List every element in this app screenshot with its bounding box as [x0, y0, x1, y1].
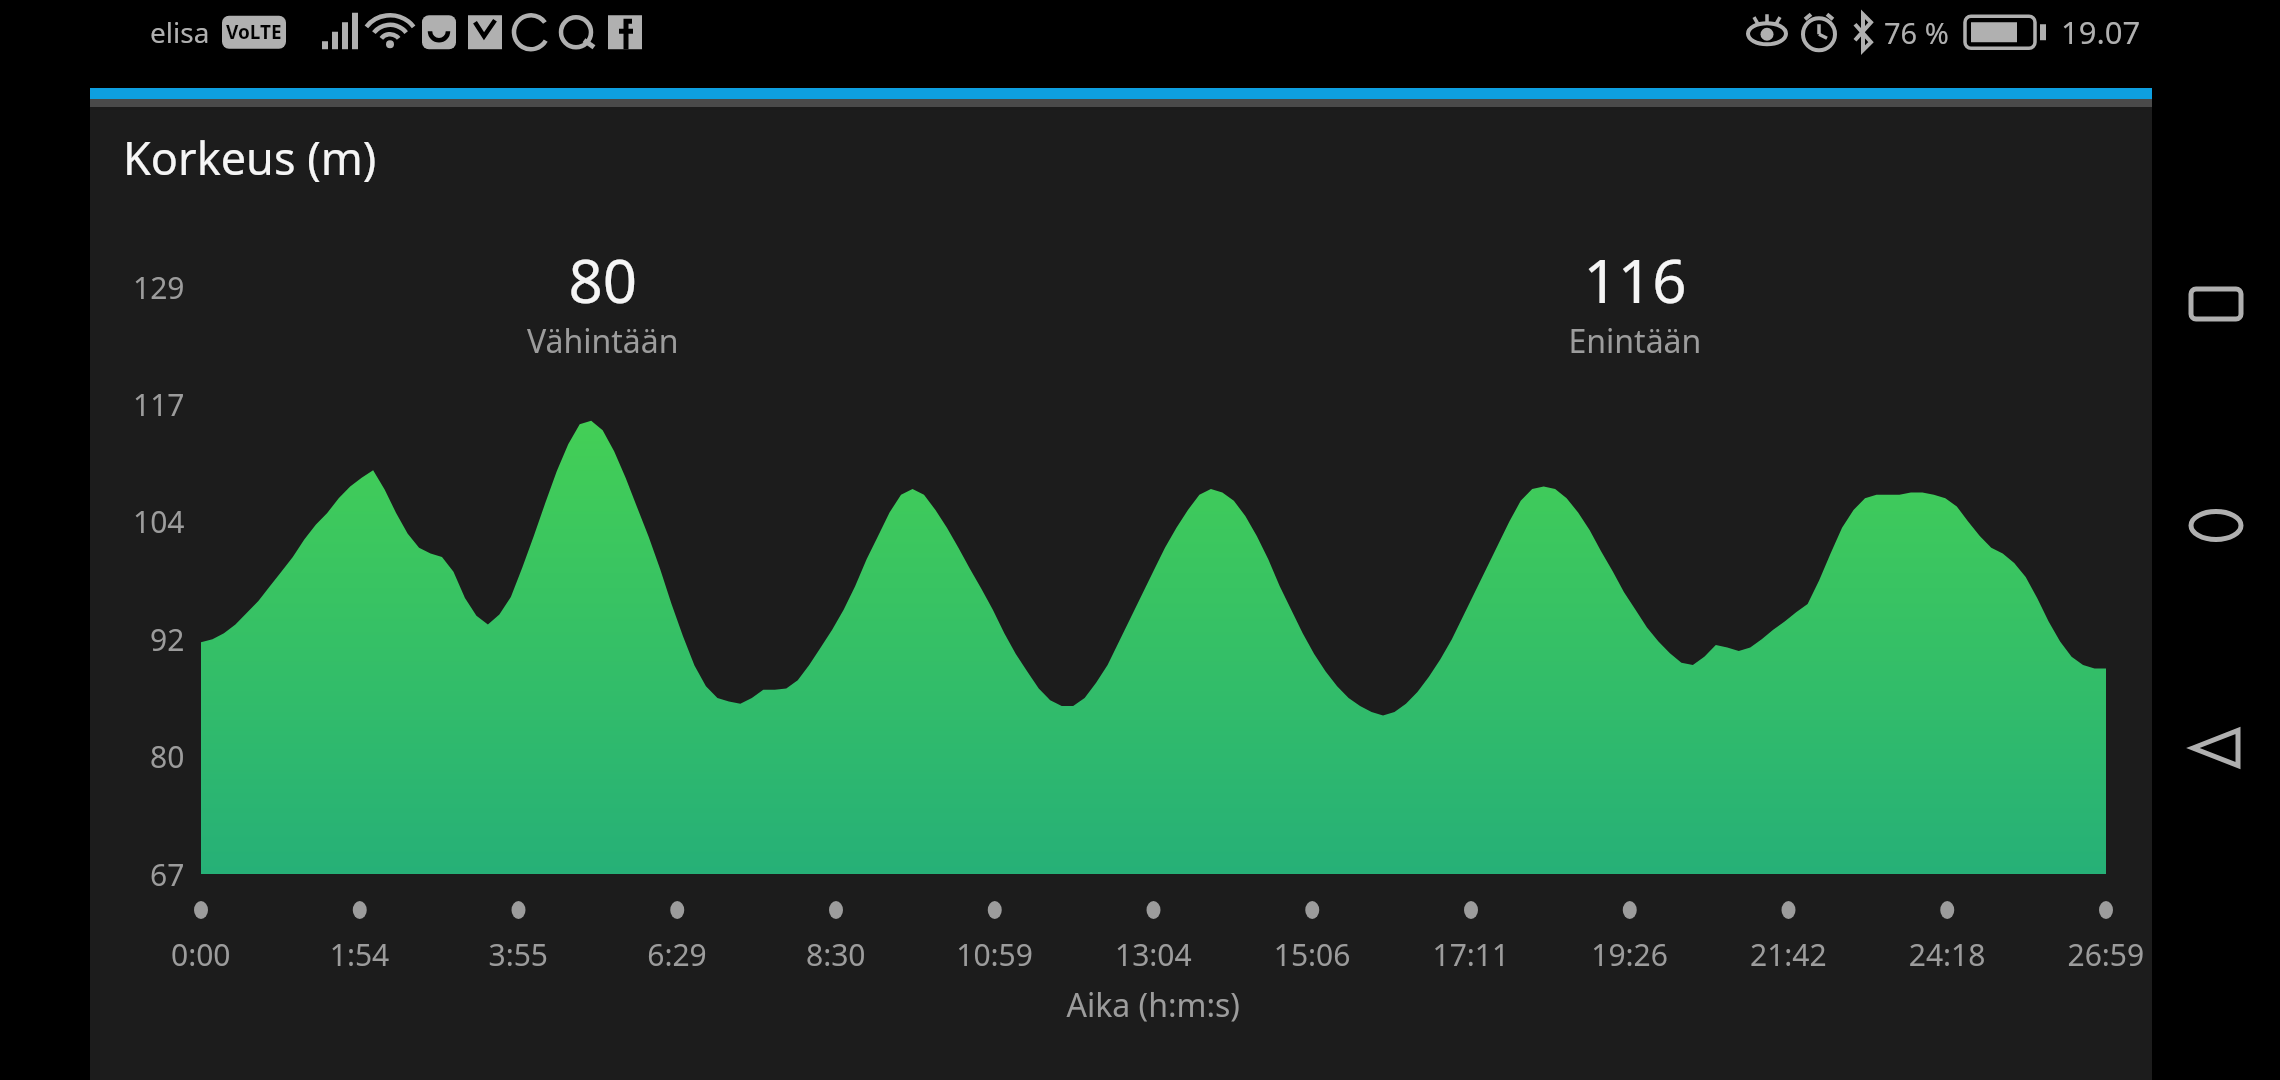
button[interactable]: Recent apps: [2168, 256, 2264, 352]
button[interactable]: Home: [2168, 478, 2264, 574]
button[interactable]: Back: [2168, 700, 2264, 796]
